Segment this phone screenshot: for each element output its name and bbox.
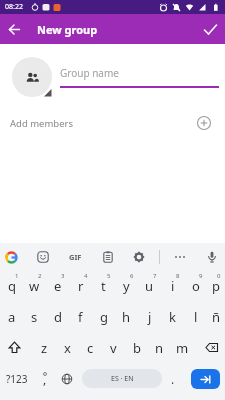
button[interactable]: g [92, 301, 115, 332]
staticText: h [122, 308, 131, 326]
staticText: g [100, 308, 108, 326]
staticText: New group [37, 22, 98, 37]
button[interactable] [0, 332, 28, 363]
button[interactable]: m [171, 332, 194, 363]
button[interactable]: u [138, 270, 161, 301]
staticText: ?123 [6, 372, 28, 386]
staticText: o [192, 277, 200, 295]
staticText: e [54, 277, 62, 295]
staticText: ñ [212, 308, 221, 326]
staticText: j [148, 308, 152, 326]
button[interactable]: GIF [64, 244, 86, 270]
button[interactable] [4, 19, 24, 39]
button[interactable]: t [92, 270, 115, 301]
staticText: 3 [61, 272, 65, 280]
button[interactable]: x [56, 332, 79, 363]
staticText: r [78, 277, 84, 295]
staticText: 8 [176, 272, 180, 280]
button[interactable]: l [184, 301, 207, 332]
button[interactable] [130, 244, 148, 270]
button[interactable]: q [0, 270, 23, 301]
staticText: f [78, 308, 83, 326]
button[interactable]: d [46, 301, 69, 332]
staticText: n [155, 339, 164, 357]
staticText: m [176, 339, 189, 357]
staticText: 7 [153, 272, 157, 280]
button[interactable]: a [0, 301, 23, 332]
staticText: c [87, 339, 94, 357]
button[interactable]: z [33, 332, 56, 363]
button[interactable]: c [79, 332, 102, 363]
button[interactable]: n [148, 332, 171, 363]
button[interactable]: ?123 [0, 363, 34, 394]
staticText: l [194, 308, 198, 326]
button[interactable]: p [207, 270, 225, 301]
button[interactable] [191, 369, 220, 389]
staticText: . [171, 371, 175, 387]
button[interactable]: h [115, 301, 138, 332]
staticText: 1 [15, 272, 19, 280]
button[interactable] [12, 57, 52, 97]
button[interactable]: j [138, 301, 161, 332]
button[interactable] [199, 18, 221, 40]
staticText: ES · EN [111, 374, 134, 384]
staticText: 9 [199, 272, 203, 280]
staticText: s [31, 308, 38, 326]
staticText: y [123, 277, 130, 295]
button[interactable]: ES · EN [82, 369, 162, 388]
staticText: t [101, 277, 106, 295]
button[interactable] [22, 244, 64, 270]
staticText: a [8, 308, 16, 326]
button[interactable]: b [125, 332, 148, 363]
button[interactable]: e [46, 270, 69, 301]
button[interactable] [201, 244, 223, 270]
staticText: z [41, 339, 48, 357]
staticText: 5 [107, 272, 111, 280]
button[interactable]: , [34, 363, 56, 394]
staticText: Group name [60, 66, 119, 80]
button[interactable]: y [115, 270, 138, 301]
button[interactable]: . [166, 363, 180, 394]
button[interactable] [0, 244, 22, 270]
staticText: p [212, 277, 220, 295]
button[interactable] [160, 244, 200, 270]
button[interactable]: ñ [207, 301, 225, 332]
staticText: w [29, 277, 40, 295]
staticText: d [54, 308, 62, 326]
button[interactable]: f [69, 301, 92, 332]
button[interactable]: w [23, 270, 46, 301]
staticText: 0 [217, 272, 221, 280]
staticText: 2 [38, 272, 42, 280]
button[interactable]: Group name [60, 66, 219, 88]
staticText: i [171, 277, 175, 295]
staticText: 08:22 [5, 2, 23, 12]
staticText: GIF [69, 252, 82, 262]
staticText: u [145, 277, 154, 295]
staticText: q [8, 277, 16, 295]
staticText: k [169, 308, 176, 326]
button[interactable]: i [161, 270, 184, 301]
staticText: v [110, 339, 117, 357]
staticText: 6 [130, 272, 134, 280]
staticText: , [43, 371, 47, 387]
staticText: 4 [84, 272, 88, 280]
button[interactable] [56, 363, 78, 394]
staticText: Add members [10, 117, 74, 130]
button[interactable]: Add members [10, 116, 211, 130]
button[interactable]: k [161, 301, 184, 332]
button[interactable]: v [102, 332, 125, 363]
button[interactable]: o [184, 270, 207, 301]
button[interactable] [199, 332, 225, 363]
button[interactable]: s [23, 301, 46, 332]
button[interactable] [86, 244, 130, 270]
staticText: b [133, 339, 141, 357]
button[interactable]: r [69, 270, 92, 301]
staticText: x [64, 339, 71, 357]
